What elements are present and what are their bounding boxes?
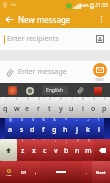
button[interactable]: (: [93, 118, 104, 139]
button[interactable]: Add recipient from contacts: [94, 33, 106, 45]
button[interactable]: 1: [0, 97, 11, 118]
button[interactable]: Keyboard theme: [7, 85, 18, 96]
staticText: y: [59, 104, 63, 114]
staticText: t: [48, 104, 51, 114]
staticText: z: [21, 146, 25, 156]
button[interactable]: Voice input: [24, 85, 35, 96]
button[interactable]: 8: [77, 97, 88, 118]
button[interactable]: ?: [83, 139, 94, 161]
staticText: ': [44, 139, 45, 143]
button[interactable]: .: [81, 161, 92, 183]
button[interactable]: Back: [0, 10, 18, 28]
staticText: v: [54, 146, 58, 156]
button[interactable]: 3: [22, 97, 33, 118]
staticText: ;: [66, 139, 67, 143]
staticText: ": [33, 139, 35, 143]
staticText: $: [32, 118, 34, 122]
button[interactable]: Attach file: [4, 67, 15, 78]
staticText: j: [76, 125, 78, 135]
staticText: n: [75, 146, 80, 156]
button[interactable]: !: [17, 139, 28, 161]
staticText: Enter message: [18, 67, 88, 77]
button[interactable]: Next: [92, 161, 110, 183]
staticText: l: [98, 125, 100, 135]
staticText: Next: [6, 173, 12, 176]
staticText: o: [91, 104, 96, 114]
button[interactable]: 7: [66, 97, 77, 118]
staticText: EN: [21, 170, 27, 175]
button[interactable]: Attach file: [0, 61, 110, 83]
staticText: Enter recipients: [7, 34, 94, 44]
staticText: a: [8, 125, 13, 135]
staticText: Next: [96, 170, 106, 175]
staticText: b: [64, 146, 69, 156]
staticText: 2: [16, 97, 18, 101]
staticText: d: [30, 125, 35, 135]
staticText: (: [98, 118, 99, 122]
staticText: p: [102, 104, 107, 114]
staticText: 5: [49, 97, 51, 101]
staticText: k: [86, 125, 90, 135]
button[interactable]: 5: [44, 97, 55, 118]
button[interactable]: 4: [33, 97, 44, 118]
button[interactable]: Enter recipients: [0, 28, 110, 50]
button[interactable]: &: [49, 118, 60, 139]
button[interactable]: Close keyboard: [92, 85, 103, 96]
button[interactable]: English: [42, 86, 68, 95]
staticText: &: [53, 118, 56, 122]
staticText: w: [14, 104, 20, 114]
button[interactable]: %: [38, 118, 49, 139]
button[interactable]: EN: [17, 161, 30, 183]
staticText: x: [32, 146, 36, 156]
button[interactable]: Send message: [93, 63, 107, 77]
staticText: :: [55, 139, 56, 143]
staticText: -: [76, 118, 77, 122]
button[interactable]: 2: [11, 97, 22, 118]
button[interactable]: 9: [88, 97, 99, 118]
button[interactable]: Shift: [0, 139, 17, 161]
button[interactable]: ;: [61, 139, 72, 161]
staticText: g: [52, 125, 57, 135]
staticText: New message: [18, 14, 92, 25]
staticText: /: [77, 139, 79, 143]
button[interactable]: #: [16, 118, 27, 139]
button[interactable]: ': [39, 139, 50, 161]
staticText: 44%: [81, 3, 89, 8]
staticText: s: [20, 125, 24, 135]
staticText: c: [43, 146, 47, 156]
button[interactable]: Space: [41, 161, 81, 183]
button[interactable]: /: [72, 139, 83, 161]
button[interactable]: *: [60, 118, 71, 139]
button[interactable]: $: [27, 118, 38, 139]
button[interactable]: ,: [30, 161, 41, 183]
staticText: !: [22, 139, 23, 143]
button[interactable]: 0: [99, 97, 110, 118]
staticText: .: [86, 169, 88, 176]
staticText: 8: [82, 97, 84, 101]
staticText: *: [65, 118, 67, 122]
button[interactable]: ": [28, 139, 39, 161]
button[interactable]: Backspace: [94, 139, 110, 161]
button[interactable]: 6: [55, 97, 66, 118]
button[interactable]: :: [50, 139, 61, 161]
staticText: i: [82, 104, 84, 114]
staticText: 1: [5, 97, 7, 101]
button[interactable]: Attach: [75, 85, 86, 96]
staticText: 21:33: [95, 2, 108, 9]
staticText: #: [21, 118, 23, 122]
staticText: %: [42, 118, 45, 122]
staticText: 160/1: [95, 77, 105, 82]
staticText: 6: [60, 97, 62, 101]
staticText: m: [85, 146, 92, 156]
staticText: +: [87, 118, 89, 122]
staticText: 3: [27, 97, 29, 101]
button[interactable]: -: [71, 118, 82, 139]
staticText: 9: [93, 97, 95, 101]
button[interactable]: @: [5, 118, 16, 139]
button[interactable]: Emoji and settings: [0, 161, 17, 183]
button[interactable]: +: [82, 118, 93, 139]
staticText: e: [25, 104, 30, 114]
staticText: r: [37, 104, 40, 114]
staticText: q: [3, 104, 8, 114]
button[interactable]: More options: [92, 10, 110, 28]
